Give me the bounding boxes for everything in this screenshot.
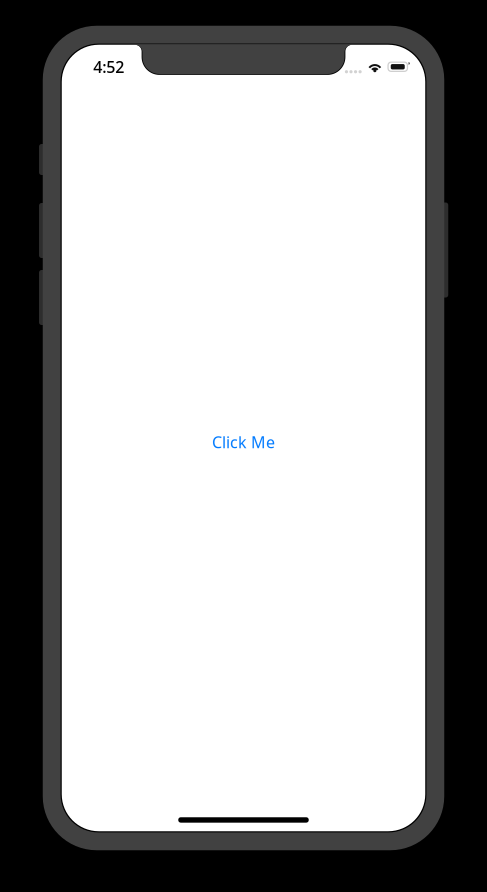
staticText: Click Me xyxy=(212,431,275,453)
button[interactable]: Click Me xyxy=(204,425,283,459)
staticText: 4:52 xyxy=(93,56,124,77)
